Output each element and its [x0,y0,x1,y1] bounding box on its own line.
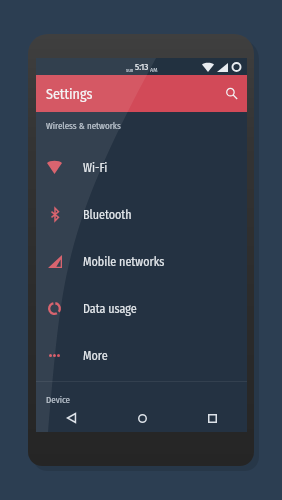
button[interactable]: Back [36,404,107,432]
staticText: Device [46,395,71,406]
staticText: Mobile networks [83,255,165,269]
staticText: More [83,349,108,363]
staticText: Data usage [83,302,137,316]
button[interactable]: Search [222,84,242,104]
button[interactable]: Bluetooth [36,190,247,237]
staticText: 5:13 [135,62,149,73]
staticText: Wireless & networks [46,121,121,132]
button[interactable]: More [36,331,247,378]
button[interactable]: Mobile networks [36,237,247,284]
staticText: Settings [46,86,93,103]
staticText: sun [126,67,134,73]
staticText: Wi-Fi [83,161,108,175]
button[interactable]: Data usage [36,284,247,331]
button[interactable]: Home [107,404,177,432]
staticText: AM [150,66,158,73]
button[interactable]: Wi-Fi [36,143,247,190]
button[interactable]: Recent apps [177,404,247,432]
staticText: Bluetooth [83,208,132,222]
